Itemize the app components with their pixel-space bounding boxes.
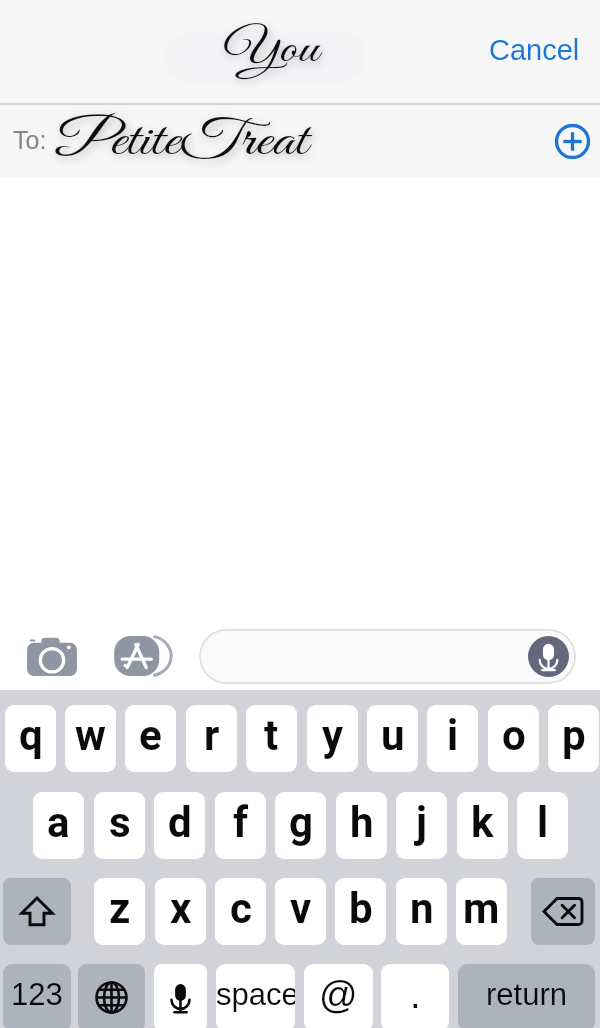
staticText: i [447, 711, 459, 760]
staticText: r [204, 711, 220, 760]
button[interactable]: m [456, 878, 507, 945]
button[interactable]: s [94, 792, 145, 859]
button[interactable]: i [427, 705, 478, 772]
staticText: PetiteTreat [55, 111, 308, 175]
button[interactable]: Cancel [482, 24, 586, 76]
button[interactable]: App Store [109, 631, 175, 679]
button[interactable]: . [381, 964, 449, 1028]
button[interactable]: Delete [531, 878, 595, 945]
button[interactable]: q [5, 705, 56, 772]
staticText: c [230, 884, 252, 933]
button[interactable]: a [33, 792, 84, 859]
staticText: h [350, 798, 374, 847]
staticText: l [537, 798, 549, 847]
button[interactable]: w [65, 705, 116, 772]
button[interactable]: r [186, 705, 237, 772]
button[interactable]: Shift [3, 878, 71, 945]
staticText: a [47, 798, 70, 847]
button[interactable]: f [215, 792, 266, 859]
button[interactable]: y [307, 705, 358, 772]
staticText: s [109, 798, 131, 847]
staticText: t [264, 711, 279, 760]
staticText: @ [319, 974, 358, 1016]
button[interactable]: return [458, 964, 595, 1028]
staticText: . [410, 974, 421, 1016]
button[interactable]: space [216, 964, 295, 1028]
button[interactable]: z [94, 878, 145, 945]
staticText: return [486, 977, 567, 1012]
button[interactable]: Camera [22, 634, 82, 678]
button[interactable]: u [367, 705, 418, 772]
staticText: v [290, 884, 312, 933]
button[interactable]: Dictate [199, 629, 576, 684]
staticText: 123 [11, 977, 63, 1012]
staticText: b [349, 884, 373, 933]
button[interactable]: h [336, 792, 387, 859]
staticText: d [168, 798, 192, 847]
button[interactable]: d [154, 792, 205, 859]
staticText: To: [13, 126, 47, 154]
button[interactable]: Dictation [154, 964, 207, 1028]
button[interactable]: To: [13, 126, 47, 154]
button[interactable]: Add contact [549, 118, 596, 165]
button[interactable]: Dictate [528, 636, 569, 677]
staticText: g [289, 798, 313, 847]
button[interactable]: p [548, 705, 599, 772]
staticText: n [410, 884, 434, 933]
staticText: u [381, 711, 405, 760]
button[interactable]: e [125, 705, 176, 772]
button[interactable]: t [246, 705, 297, 772]
staticText: y [322, 711, 344, 760]
staticText: Cancel [489, 34, 580, 66]
staticText: f [233, 798, 249, 847]
button[interactable]: k [457, 792, 508, 859]
staticText: o [502, 711, 526, 760]
button[interactable]: o [488, 705, 539, 772]
staticText: x [170, 884, 192, 933]
button[interactable]: x [155, 878, 206, 945]
staticText: k [471, 798, 494, 847]
staticText: w [75, 711, 106, 760]
staticText: j [416, 798, 427, 847]
staticText: m [463, 884, 500, 933]
staticText: e [139, 711, 162, 760]
button[interactable]: 123 [3, 964, 71, 1028]
button[interactable]: Switch keyboard [78, 964, 145, 1028]
button[interactable]: v [275, 878, 326, 945]
button[interactable]: g [275, 792, 326, 859]
staticText: p [562, 711, 586, 760]
button[interactable]: c [215, 878, 266, 945]
button[interactable]: n [396, 878, 447, 945]
staticText: q [19, 711, 43, 760]
staticText: z [109, 884, 131, 933]
button[interactable]: b [335, 878, 386, 945]
button[interactable]: l [517, 792, 568, 859]
staticText: You [223, 24, 319, 78]
button[interactable]: j [396, 792, 447, 859]
staticText: space [216, 977, 295, 1012]
button[interactable]: @ [304, 964, 373, 1028]
